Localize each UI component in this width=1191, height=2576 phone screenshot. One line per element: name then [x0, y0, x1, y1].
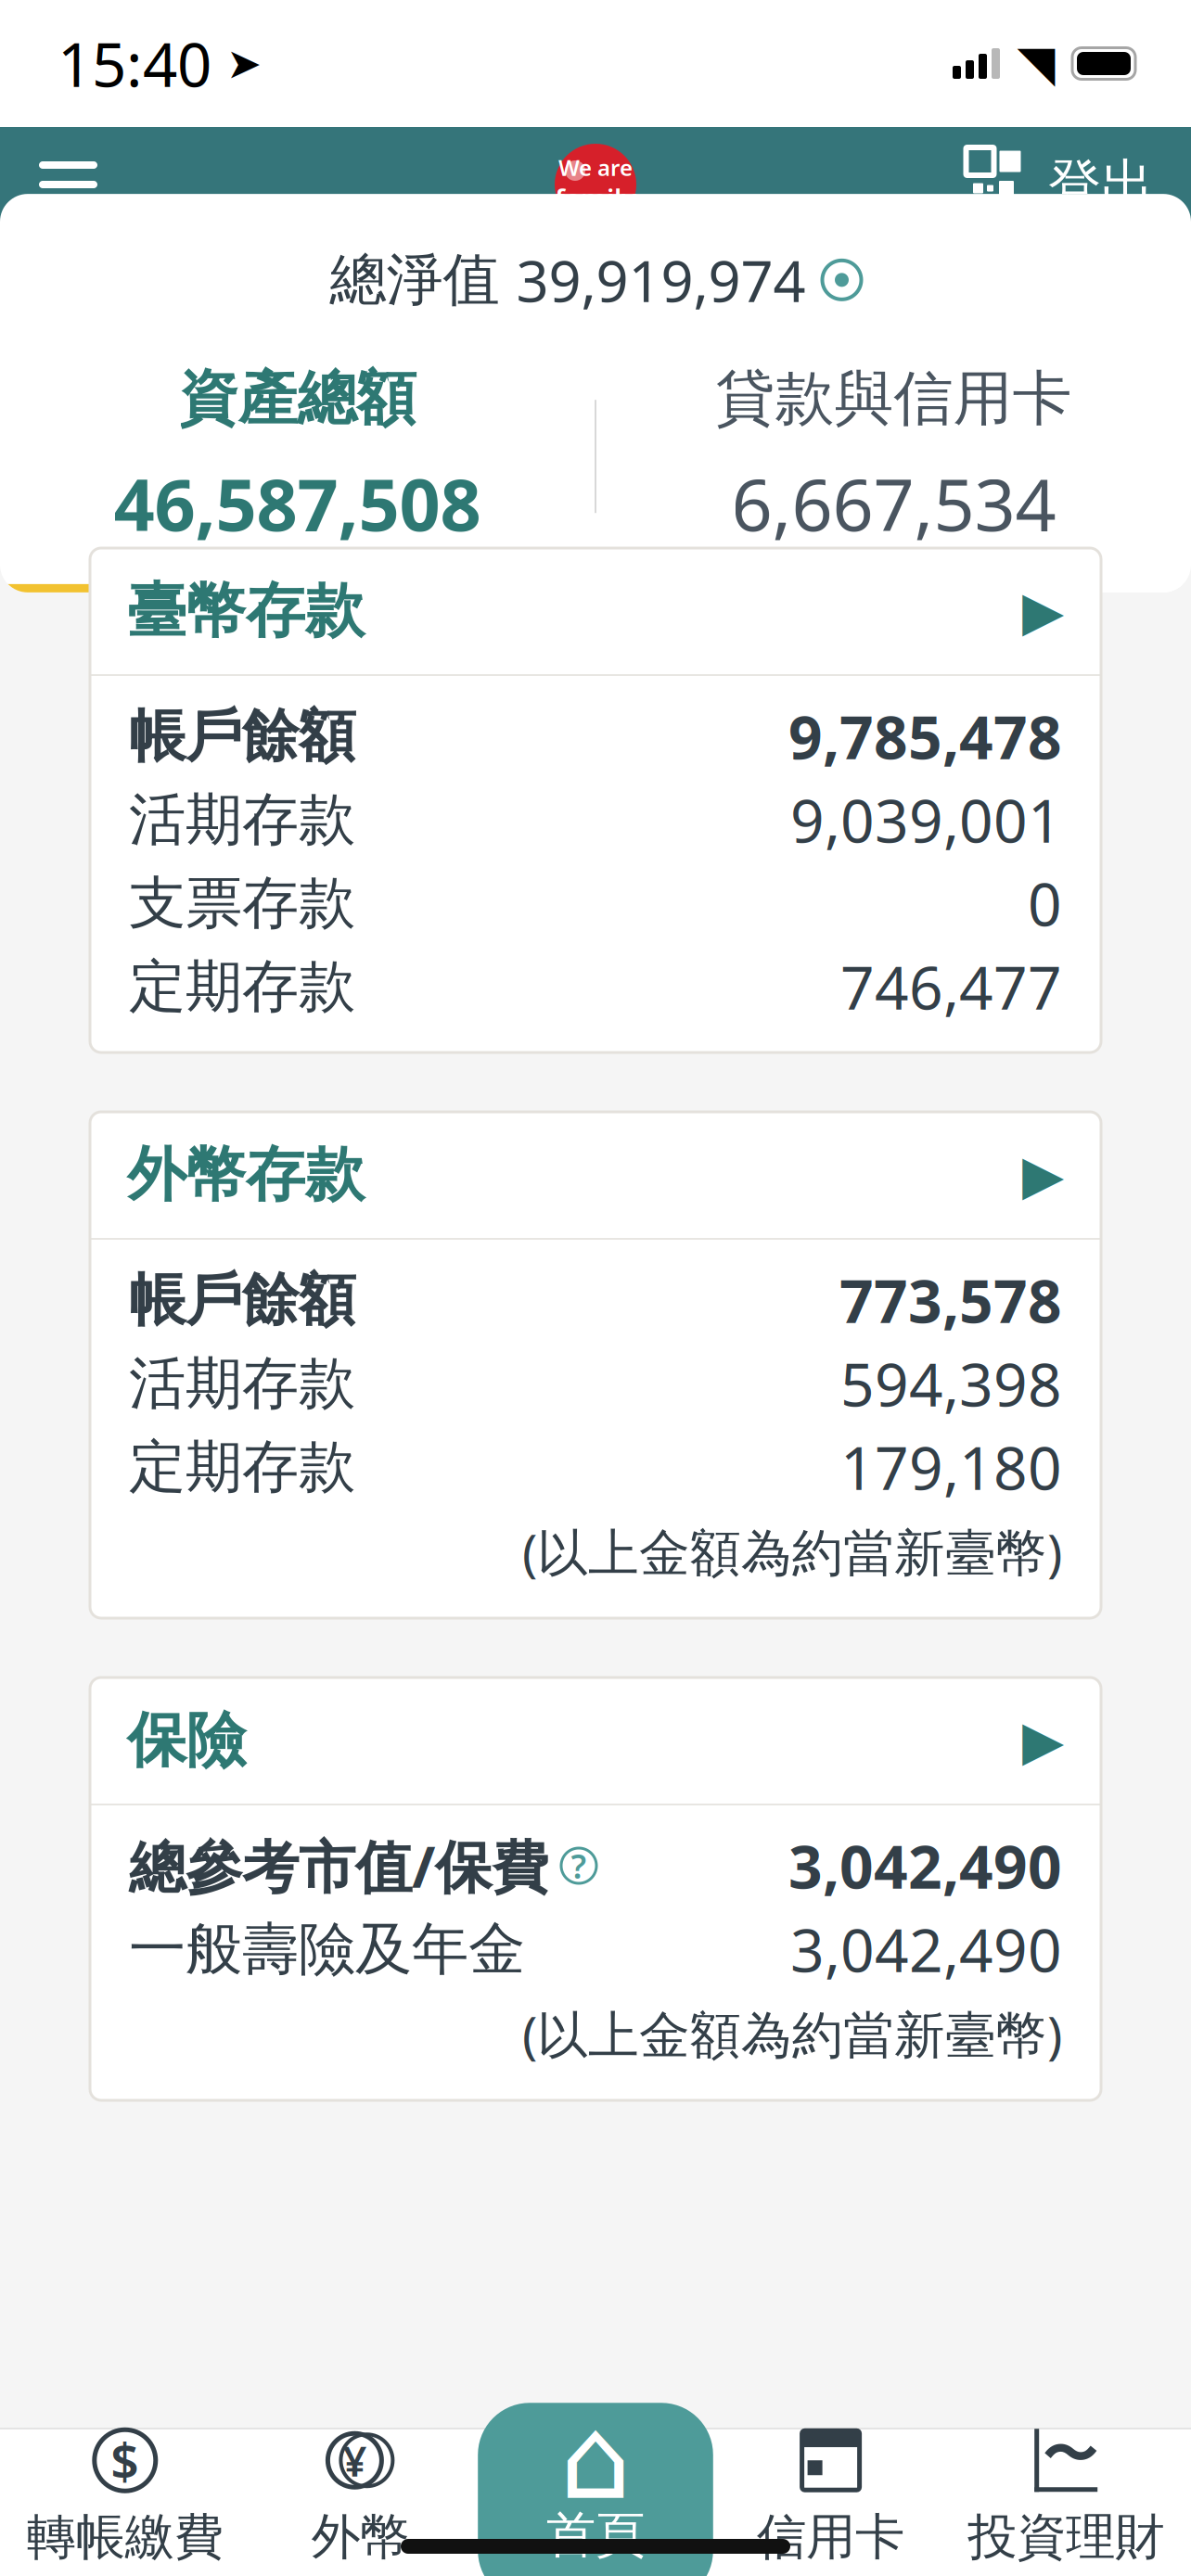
- button[interactable]: 貸款與信用卡: [596, 357, 1191, 556]
- staticText: 39,919,974: [516, 242, 806, 318]
- staticText: 帳戶餘額: [129, 1265, 355, 1335]
- staticText: 9,785,478: [788, 697, 1062, 776]
- staticText: ◥: [1017, 35, 1055, 92]
- staticText: 3,042,490: [790, 1910, 1062, 1989]
- button[interactable]: 資產總額: [0, 357, 595, 556]
- button[interactable]: ¥: [243, 2403, 478, 2576]
- button[interactable]: 登出: [1037, 137, 1165, 232]
- staticText: 活期存款: [129, 1349, 355, 1418]
- button[interactable]: 〜: [948, 2403, 1184, 2576]
- staticText: We are: [558, 153, 633, 182]
- staticText: 首頁: [546, 2505, 645, 2566]
- staticText: 總淨值: [330, 245, 499, 315]
- staticText: 轉帳繳費: [27, 2507, 223, 2567]
- staticText: ▶: [1022, 1710, 1064, 1771]
- staticText: 臺幣存款: [127, 575, 365, 648]
- staticText: ▶: [1022, 1144, 1064, 1206]
- staticText: ▶: [1022, 580, 1064, 642]
- button[interactable]: 臺幣存款: [90, 548, 1101, 674]
- staticText: 179,180: [840, 1428, 1062, 1506]
- staticText: 總參考市值/保費: [129, 1828, 548, 1903]
- staticText: family: [555, 180, 636, 217]
- staticText: 0: [1028, 864, 1062, 943]
- button[interactable]: Menu: [19, 139, 118, 230]
- button[interactable]: ⌂: [478, 2403, 713, 2576]
- staticText: (以上金額為約當新臺幣): [522, 1518, 1062, 1585]
- staticText: ➤: [211, 40, 262, 87]
- staticText: 46,587,508: [114, 455, 481, 551]
- staticText: 773,578: [839, 1261, 1062, 1339]
- button[interactable]: 信用卡: [713, 2403, 948, 2576]
- button[interactable]: 總淨值: [330, 235, 861, 325]
- staticText: 外幣: [311, 2507, 409, 2567]
- staticText: 〜: [1042, 2422, 1097, 2489]
- staticText: 定期存款: [129, 952, 355, 1021]
- staticText: 9,039,001: [790, 780, 1062, 859]
- staticText: 15:40: [58, 23, 211, 104]
- staticText: 594,398: [840, 1344, 1062, 1423]
- button[interactable]: 外幣存款: [90, 1112, 1101, 1238]
- staticText: 信用卡: [757, 2507, 904, 2567]
- staticText: 投資理財: [968, 2507, 1164, 2567]
- staticText: 活期存款: [129, 785, 355, 855]
- staticText: 一般壽險及年金: [129, 1914, 525, 1984]
- staticText: ⌂: [559, 2394, 632, 2523]
- staticText: 登出: [1048, 152, 1154, 217]
- staticText: 746,477: [840, 947, 1062, 1026]
- staticText: 3,042,490: [788, 1826, 1062, 1905]
- staticText: 貸款與信用卡: [716, 362, 1072, 435]
- staticText: 外幣存款: [127, 1138, 365, 1211]
- staticText: 帳戶餘額: [129, 701, 355, 771]
- staticText: 定期存款: [129, 1432, 355, 1502]
- button[interactable]: QR code scanner: [950, 141, 1037, 228]
- staticText: 支票存款: [129, 868, 355, 938]
- staticText: ?: [571, 1844, 587, 1888]
- button[interactable]: $: [7, 2403, 243, 2576]
- staticText: $: [111, 2427, 139, 2493]
- button[interactable]: 保險: [90, 1677, 1101, 1804]
- staticText: 6,667,534: [731, 455, 1056, 551]
- staticText: 資產總額: [179, 362, 416, 435]
- staticText: ¥: [343, 2432, 367, 2488]
- staticText: (以上金額為約當新臺幣): [522, 2000, 1062, 2067]
- staticText: 保險: [127, 1704, 246, 1777]
